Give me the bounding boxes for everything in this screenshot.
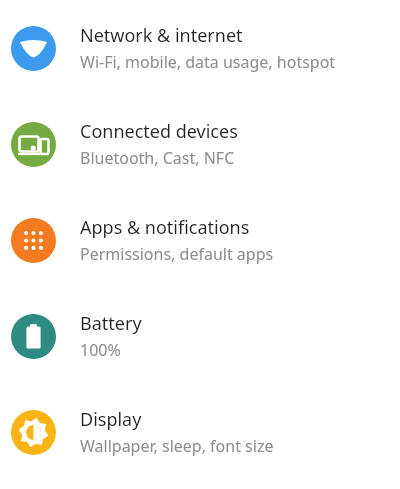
other: Network and internet: [11, 26, 56, 71]
staticText: Wallpaper, sleep, font size: [80, 435, 274, 457]
staticText: 100%: [80, 339, 121, 361]
staticText: Bluetooth, Cast, NFC: [80, 147, 235, 169]
staticText: Network & internet: [80, 23, 243, 48]
button[interactable]: Apps and notifications: [0, 192, 400, 288]
other: Connected devices: [11, 122, 56, 167]
other: Apps and notifications: [11, 218, 56, 263]
other: Battery: [11, 314, 56, 359]
staticText: Apps & notifications: [80, 215, 250, 240]
button[interactable]: Display: [0, 384, 400, 480]
staticText: Display: [80, 407, 142, 432]
staticText: Wi-Fi, mobile, data usage, hotspot: [80, 51, 336, 73]
other: Display: [11, 410, 56, 455]
staticText: Connected devices: [80, 119, 238, 144]
button[interactable]: Battery: [0, 288, 400, 384]
button[interactable]: Connected devices: [0, 96, 400, 192]
button[interactable]: Network and internet: [0, 0, 400, 96]
staticText: Permissions, default apps: [80, 243, 274, 265]
staticText: Battery: [80, 311, 142, 336]
